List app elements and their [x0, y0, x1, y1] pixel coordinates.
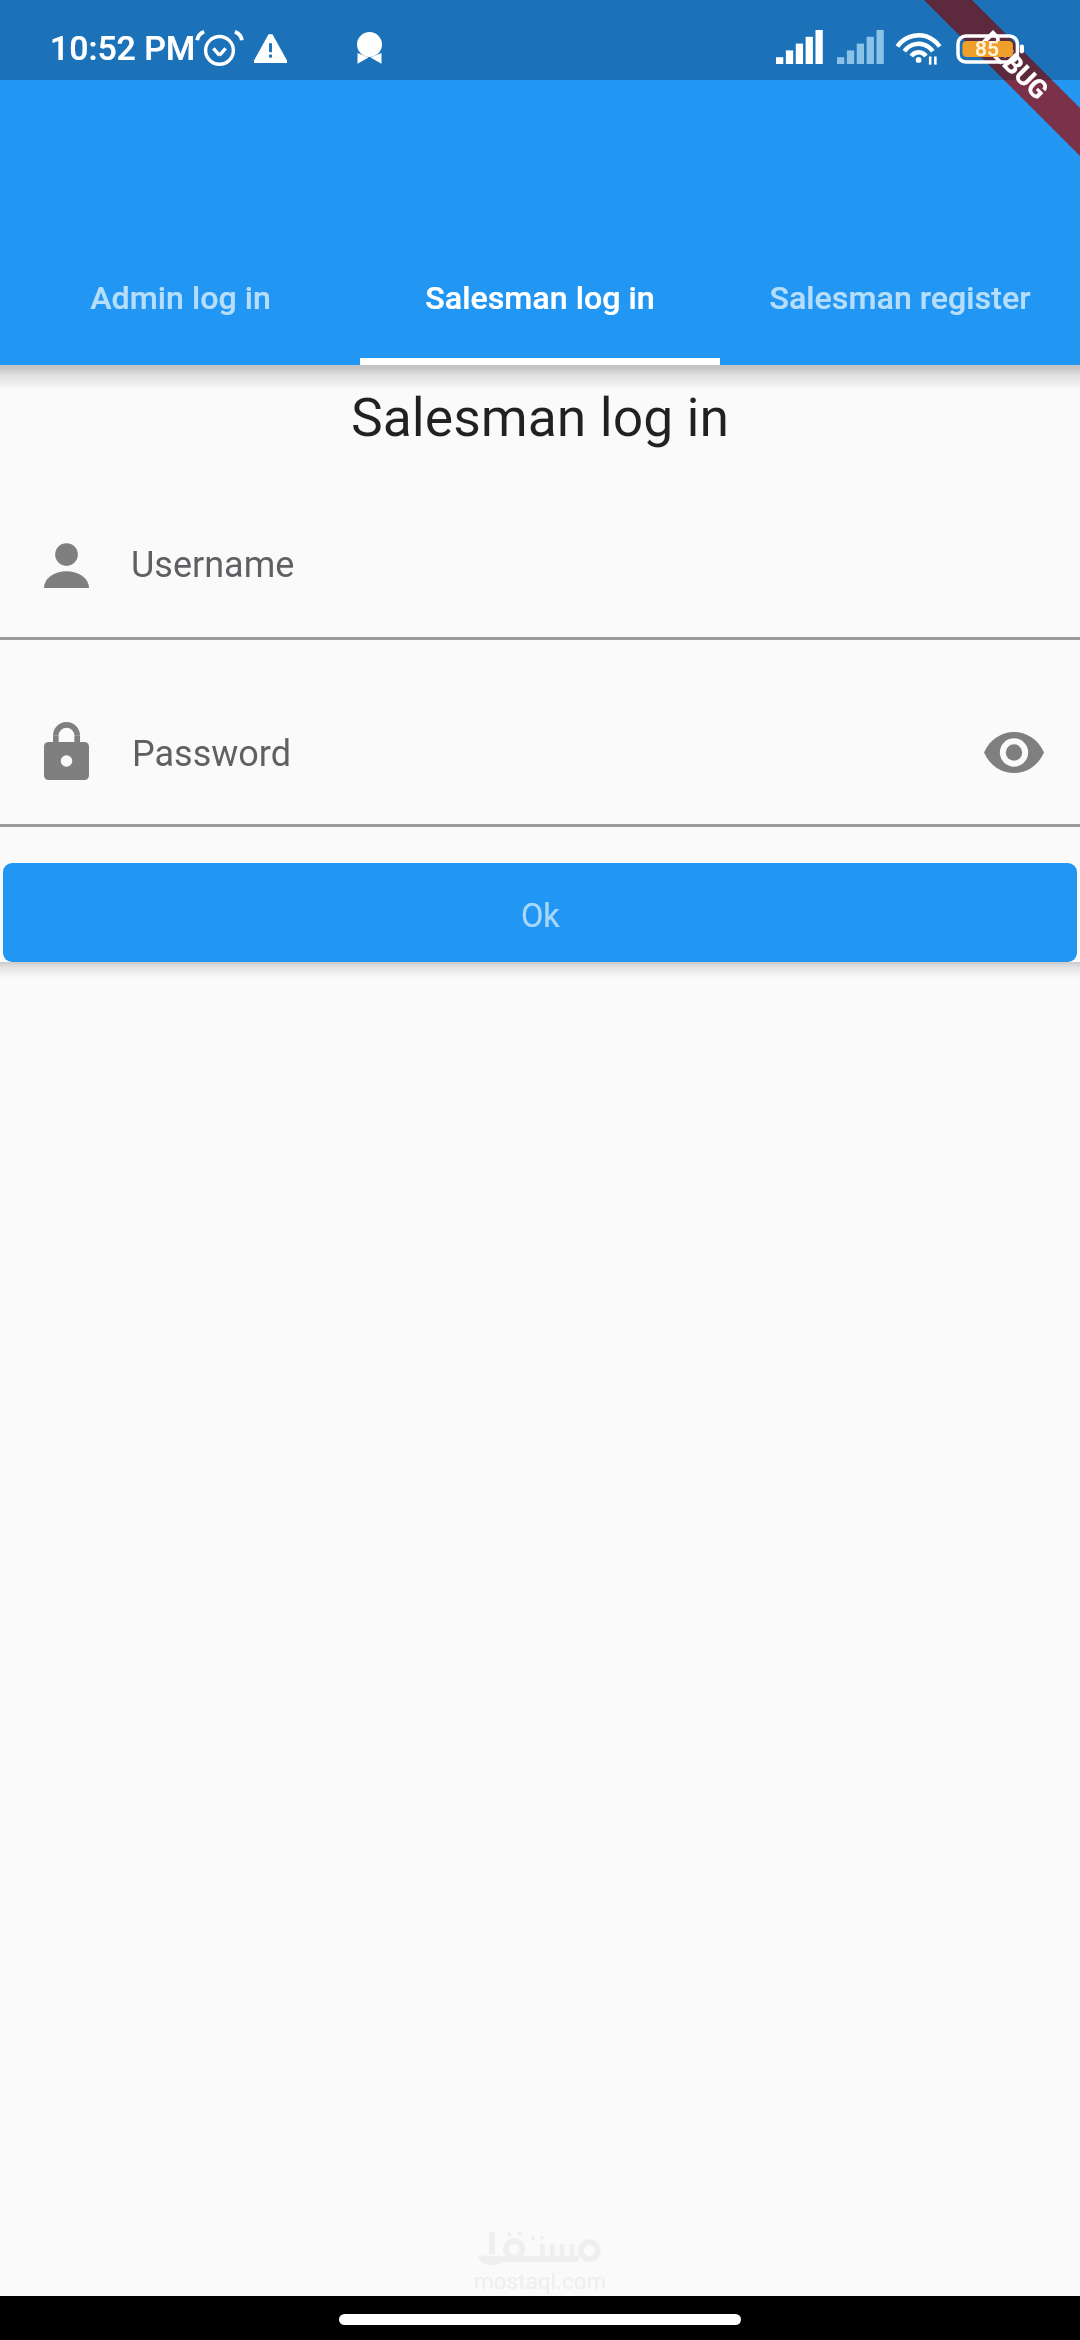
staticText: DEBUG — [974, 25, 1054, 105]
button[interactable]: Username — [0, 460, 1080, 637]
staticText: Username — [131, 544, 295, 586]
button[interactable]: Salesman register — [720, 246, 1080, 350]
button[interactable]: Admin log in — [0, 246, 360, 350]
button[interactable]: Show password — [960, 712, 1068, 792]
staticText: 10:52 PM — [50, 29, 196, 69]
other: Home — [339, 2314, 741, 2325]
button[interactable]: Ok — [3, 863, 1077, 962]
staticText: Salesman log in — [425, 279, 655, 317]
button[interactable]: Password — [0, 640, 1080, 824]
staticText: Salesman register — [769, 279, 1031, 317]
staticText: 85 — [975, 37, 999, 62]
staticText: Salesman log in — [0, 386, 1080, 449]
staticText: Admin log in — [90, 279, 271, 317]
staticText: mostaql.com — [474, 2268, 607, 2294]
button[interactable]: Salesman log in — [360, 246, 720, 350]
staticText: Password — [132, 733, 292, 775]
staticText: Ok — [521, 897, 560, 935]
